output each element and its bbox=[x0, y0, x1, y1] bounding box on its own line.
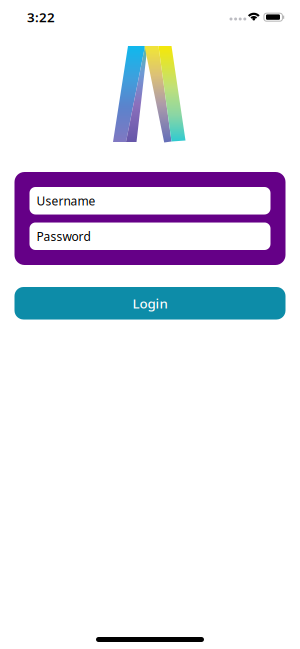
staticText: Username bbox=[36, 193, 95, 209]
staticText: Password bbox=[36, 228, 90, 244]
button[interactable]: Login bbox=[14, 287, 285, 319]
button[interactable]: Password bbox=[29, 222, 270, 250]
staticText: Login bbox=[132, 294, 167, 312]
staticText: 3:22 bbox=[27, 8, 55, 26]
button[interactable]: Username bbox=[29, 187, 270, 214]
